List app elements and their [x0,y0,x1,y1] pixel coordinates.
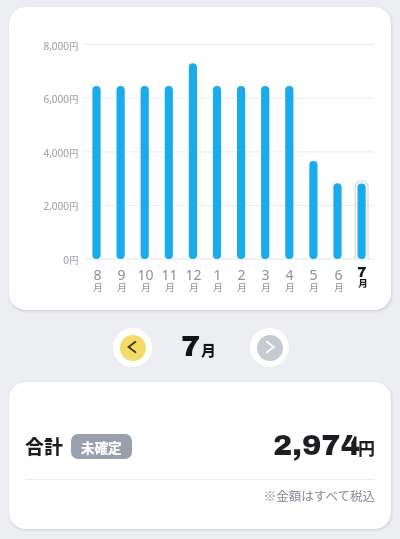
staticText: 円 [358,435,375,460]
staticText: 月 [93,280,103,294]
staticText: 4 [285,265,294,284]
staticText: 11 [161,265,178,284]
staticText: 6 [334,265,343,284]
button[interactable]: 6月 [326,37,350,299]
staticText: 7 [181,331,201,363]
button[interactable]: 3月 [253,37,277,299]
staticText: 月 [201,339,217,361]
staticText: 月 [117,280,127,294]
staticText: 月 [358,276,368,290]
staticText: 2,974 [273,430,361,462]
button[interactable]: 2月 [229,37,253,299]
staticText: 12 [185,265,202,284]
staticText: 8,000円 [9,39,79,53]
staticText: 6,000円 [9,92,79,106]
staticText: 2 [237,265,246,284]
staticText: 月 [237,280,247,294]
staticText: 月 [213,280,223,294]
staticText: 4,000円 [9,146,79,160]
staticText: 未確定 [81,437,122,457]
button[interactable]: 9月 [109,37,133,299]
staticText: 5 [309,265,318,284]
staticText: 3 [261,265,270,284]
button[interactable]: 7月 [350,37,374,299]
staticText: 9 [117,265,126,284]
staticText: 7 [357,265,367,280]
button[interactable]: Previous month [113,328,152,367]
button[interactable]: 12月 [181,37,205,299]
button[interactable]: 5月 [301,37,325,299]
staticText: 月 [334,280,344,294]
staticText: ※金額はすべて税込 [25,486,375,504]
staticText: 月 [165,280,175,294]
button[interactable]: 1月 [205,37,229,299]
staticText: 月 [141,280,151,294]
button[interactable]: 4月 [277,37,301,299]
staticText: 月 [309,280,319,294]
staticText: 月 [261,280,271,294]
staticText: 1 [213,265,222,284]
staticText: 8 [93,265,102,284]
button[interactable]: 8月 [85,37,109,299]
staticText: 10 [137,265,154,284]
staticText: 2,000円 [9,199,79,213]
staticText: 0円 [9,253,79,267]
staticText: 月 [189,280,199,294]
button[interactable]: Next month [250,328,289,367]
button[interactable]: 11月 [157,37,181,299]
staticText: 月 [285,280,295,294]
button[interactable]: 10月 [133,37,157,299]
staticText: 合計 [25,432,64,460]
